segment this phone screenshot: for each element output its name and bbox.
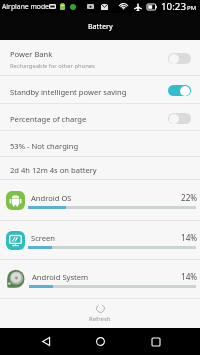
button[interactable]: Power Bank (0, 40, 200, 75)
staticText: Standby intelligent power saving (10, 87, 127, 97)
button[interactable]: 53% - Not charging (0, 131, 200, 156)
button[interactable]: Recent apps (143, 329, 168, 354)
staticText: Power Bank (10, 49, 53, 59)
staticText: 53% - Not charging (10, 141, 79, 151)
staticText: 10:23 (161, 0, 187, 13)
staticText: Refresh (89, 315, 111, 323)
staticText: Android System (32, 272, 89, 282)
button[interactable]: Screen (0, 221, 200, 259)
staticText: 22% (181, 192, 198, 203)
staticText: 2d 4h 12m 4s on battery (10, 165, 97, 175)
staticText: Battery (88, 22, 113, 32)
button[interactable]: Back (33, 329, 58, 354)
button[interactable]: Percentage of charge (0, 104, 200, 130)
button[interactable]: Android OS (0, 180, 200, 220)
button[interactable]: Refresh (0, 299, 200, 328)
button[interactable]: Android System (0, 260, 200, 298)
staticText: 14% (181, 232, 198, 243)
staticText: Percentage of charge (10, 114, 87, 124)
staticText: Android OS (31, 193, 72, 203)
staticText: 14% (181, 271, 198, 282)
staticText: Airplane mode (2, 2, 49, 11)
button[interactable]: Home (88, 329, 113, 354)
button[interactable]: 2d 4h 12m 4s on battery (0, 157, 200, 179)
button[interactable]: Standby intelligent power saving (0, 76, 200, 103)
staticText: Rechargeable for other phones (10, 62, 95, 70)
staticText: PM (187, 4, 197, 12)
staticText: Screen (31, 233, 56, 243)
